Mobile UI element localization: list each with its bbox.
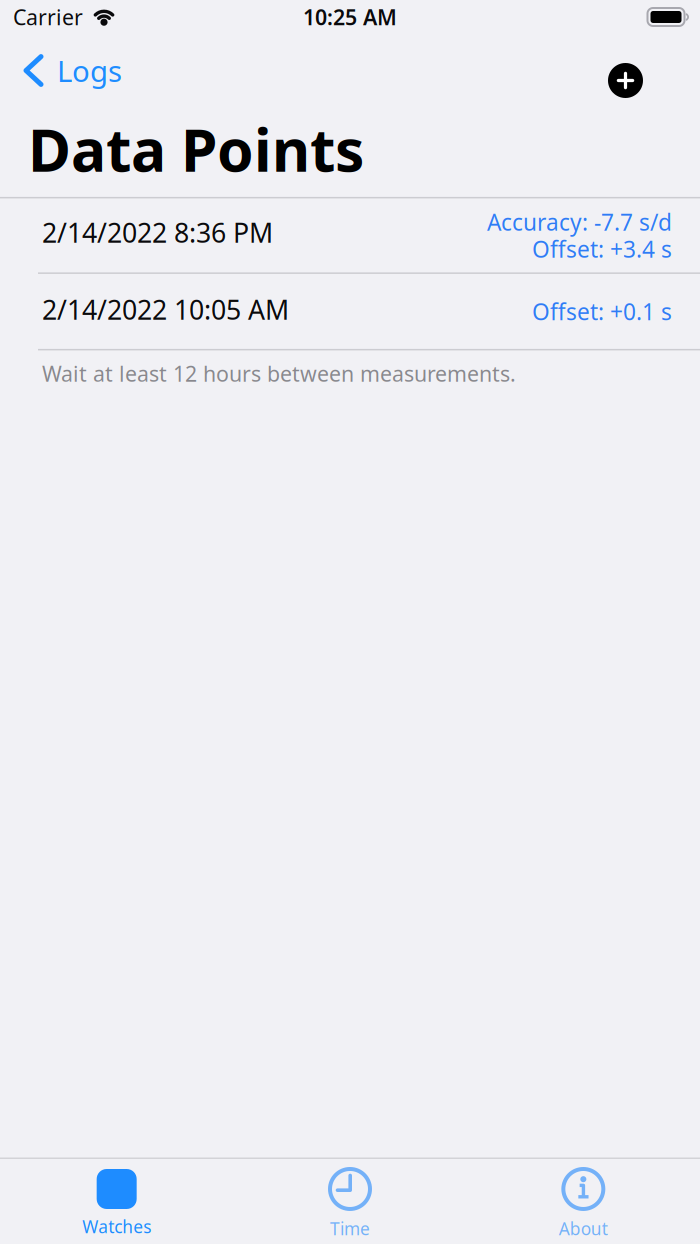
button[interactable]: Watches bbox=[0, 1160, 233, 1243]
button[interactable]: 2/14/2022 8:36 PM bbox=[0, 198, 700, 272]
button[interactable]: 2/14/2022 10:05 AM bbox=[0, 274, 700, 349]
staticText: Wait at least 12 hours between measureme… bbox=[42, 359, 516, 388]
staticText: Time bbox=[330, 1217, 370, 1240]
staticText: Offset: +0.1 s bbox=[532, 296, 672, 326]
staticText: Watches bbox=[82, 1215, 151, 1238]
staticText: Accuracy: -7.7 s/d bbox=[487, 207, 672, 237]
staticText: Offset: +3.4 s bbox=[532, 234, 672, 264]
button[interactable]: About bbox=[467, 1158, 700, 1244]
staticText: Data Points bbox=[28, 110, 364, 188]
staticText: 2/14/2022 8:36 PM bbox=[42, 215, 273, 250]
button[interactable]: Logs bbox=[0, 43, 136, 98]
staticText: Carrier bbox=[13, 3, 83, 31]
staticText: 10:25 AM bbox=[303, 3, 397, 31]
staticText: About bbox=[559, 1217, 608, 1240]
button[interactable]: Time bbox=[233, 1158, 467, 1244]
button[interactable]: Add bbox=[584, 43, 700, 98]
staticText: 2/14/2022 10:05 AM bbox=[42, 292, 289, 327]
staticText: Logs bbox=[57, 51, 122, 90]
